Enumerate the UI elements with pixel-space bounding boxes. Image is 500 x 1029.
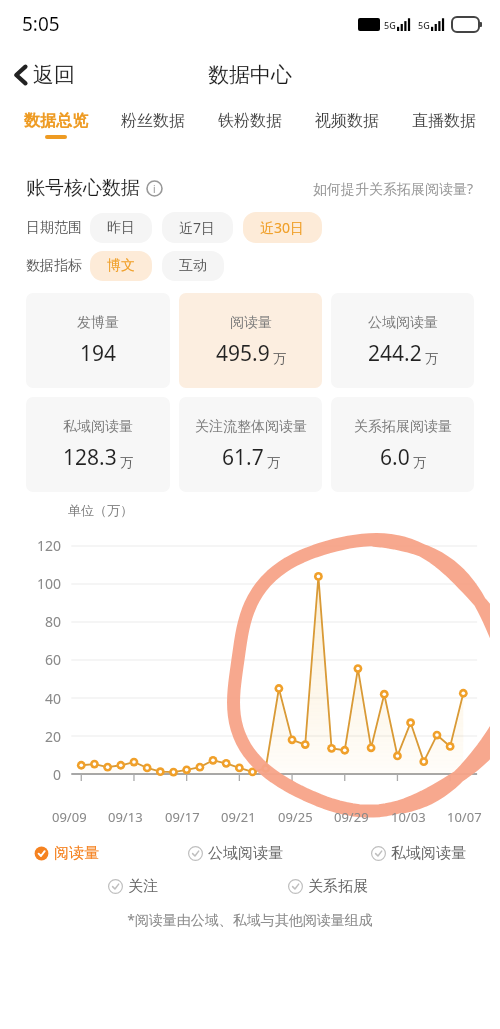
- button[interactable]: 关注流整体阅读量: [179, 397, 322, 492]
- button[interactable]: 视频数据: [298, 102, 395, 148]
- staticText: i: [153, 182, 156, 196]
- staticText: 万: [273, 350, 286, 366]
- staticText: 40: [45, 689, 62, 708]
- staticText: 返回: [33, 62, 75, 88]
- staticText: 关注流整体阅读量: [195, 418, 307, 436]
- button[interactable]: 铁粉数据: [201, 102, 298, 148]
- staticText: 数据指标: [26, 257, 82, 275]
- staticText: 万: [413, 454, 426, 470]
- button[interactable]: 如何提升关系拓展阅读量?: [313, 179, 474, 198]
- staticText: 关注: [128, 877, 158, 896]
- staticText: 账号核心数据: [26, 176, 140, 200]
- staticText: 120: [37, 536, 62, 555]
- staticText: *阅读量由公域、私域与其他阅读量组成: [10, 910, 490, 929]
- staticText: 5:05: [22, 11, 60, 37]
- staticText: 09/13: [108, 808, 143, 826]
- staticText: 10/03: [391, 808, 426, 826]
- staticText: 关系拓展阅读量: [354, 418, 452, 436]
- staticText: 5G: [418, 19, 430, 31]
- button[interactable]: 私域阅读量: [369, 840, 468, 867]
- staticText: 博文: [107, 257, 135, 275]
- button[interactable]: 发博量: [26, 293, 170, 388]
- button[interactable]: 粉丝数据: [104, 102, 201, 148]
- staticText: 194: [80, 339, 117, 368]
- button[interactable]: 互动: [162, 251, 224, 281]
- staticText: 关系拓展: [308, 877, 368, 896]
- staticText: 244.2: [368, 339, 422, 368]
- button[interactable]: 返回: [0, 56, 85, 94]
- button[interactable]: 私域阅读量: [26, 397, 170, 492]
- button[interactable]: 阅读量: [179, 293, 322, 388]
- button[interactable]: 公域阅读量: [331, 293, 474, 388]
- button[interactable]: 近30日: [243, 212, 322, 243]
- button[interactable]: 直播数据: [395, 102, 492, 148]
- staticText: 数据总览: [24, 111, 88, 131]
- staticText: 80: [45, 612, 62, 631]
- button[interactable]: 关系拓展阅读量: [331, 397, 474, 492]
- staticText: 09/21: [221, 808, 256, 826]
- button[interactable]: 关系拓展: [286, 873, 370, 900]
- staticText: 09/09: [52, 808, 87, 826]
- staticText: 私域阅读量: [63, 418, 133, 436]
- button[interactable]: 关注: [106, 873, 160, 900]
- staticText: 09/25: [278, 808, 313, 826]
- staticText: 数据中心: [208, 62, 292, 88]
- button[interactable]: 近7日: [162, 212, 233, 243]
- staticText: 20: [45, 727, 62, 746]
- staticText: 视频数据: [315, 111, 379, 131]
- staticText: 万: [425, 350, 438, 366]
- staticText: 09/17: [165, 808, 200, 826]
- staticText: 发博量: [77, 314, 119, 332]
- staticText: 公域阅读量: [368, 314, 438, 332]
- staticText: 阅读量: [230, 314, 272, 332]
- staticText: 5G: [384, 19, 396, 31]
- staticText: 阅读量: [54, 844, 99, 863]
- staticText: 私域阅读量: [391, 844, 466, 863]
- staticText: 128.3: [63, 443, 117, 472]
- staticText: 铁粉数据: [218, 111, 282, 131]
- staticText: 61.7: [222, 443, 264, 472]
- staticText: 日期范围: [26, 219, 82, 237]
- staticText: 495.9: [216, 339, 270, 368]
- button[interactable]: 说明: [146, 180, 163, 197]
- staticText: 近7日: [179, 218, 216, 237]
- staticText: 0: [53, 765, 62, 784]
- staticText: 万: [120, 454, 133, 470]
- staticText: 60: [45, 650, 62, 669]
- staticText: 6.0: [380, 443, 410, 472]
- staticText: 直播数据: [412, 111, 476, 131]
- staticText: 近30日: [260, 218, 305, 237]
- staticText: 单位（万）: [68, 502, 133, 518]
- button[interactable]: 昨日: [90, 213, 152, 243]
- button[interactable]: 公域阅读量: [186, 840, 285, 867]
- button[interactable]: 博文: [90, 251, 152, 281]
- staticText: 公域阅读量: [208, 844, 283, 863]
- button[interactable]: 阅读量: [32, 840, 101, 867]
- staticText: 100: [37, 574, 62, 593]
- staticText: 互动: [179, 257, 207, 275]
- staticText: 万: [267, 454, 280, 470]
- other: 说明: [146, 180, 163, 197]
- staticText: 粉丝数据: [121, 111, 185, 131]
- other: 返回: [14, 64, 28, 86]
- staticText: 10/07: [447, 808, 482, 826]
- button[interactable]: 数据总览: [8, 102, 104, 148]
- staticText: 09/29: [334, 808, 369, 826]
- staticText: 昨日: [107, 219, 135, 237]
